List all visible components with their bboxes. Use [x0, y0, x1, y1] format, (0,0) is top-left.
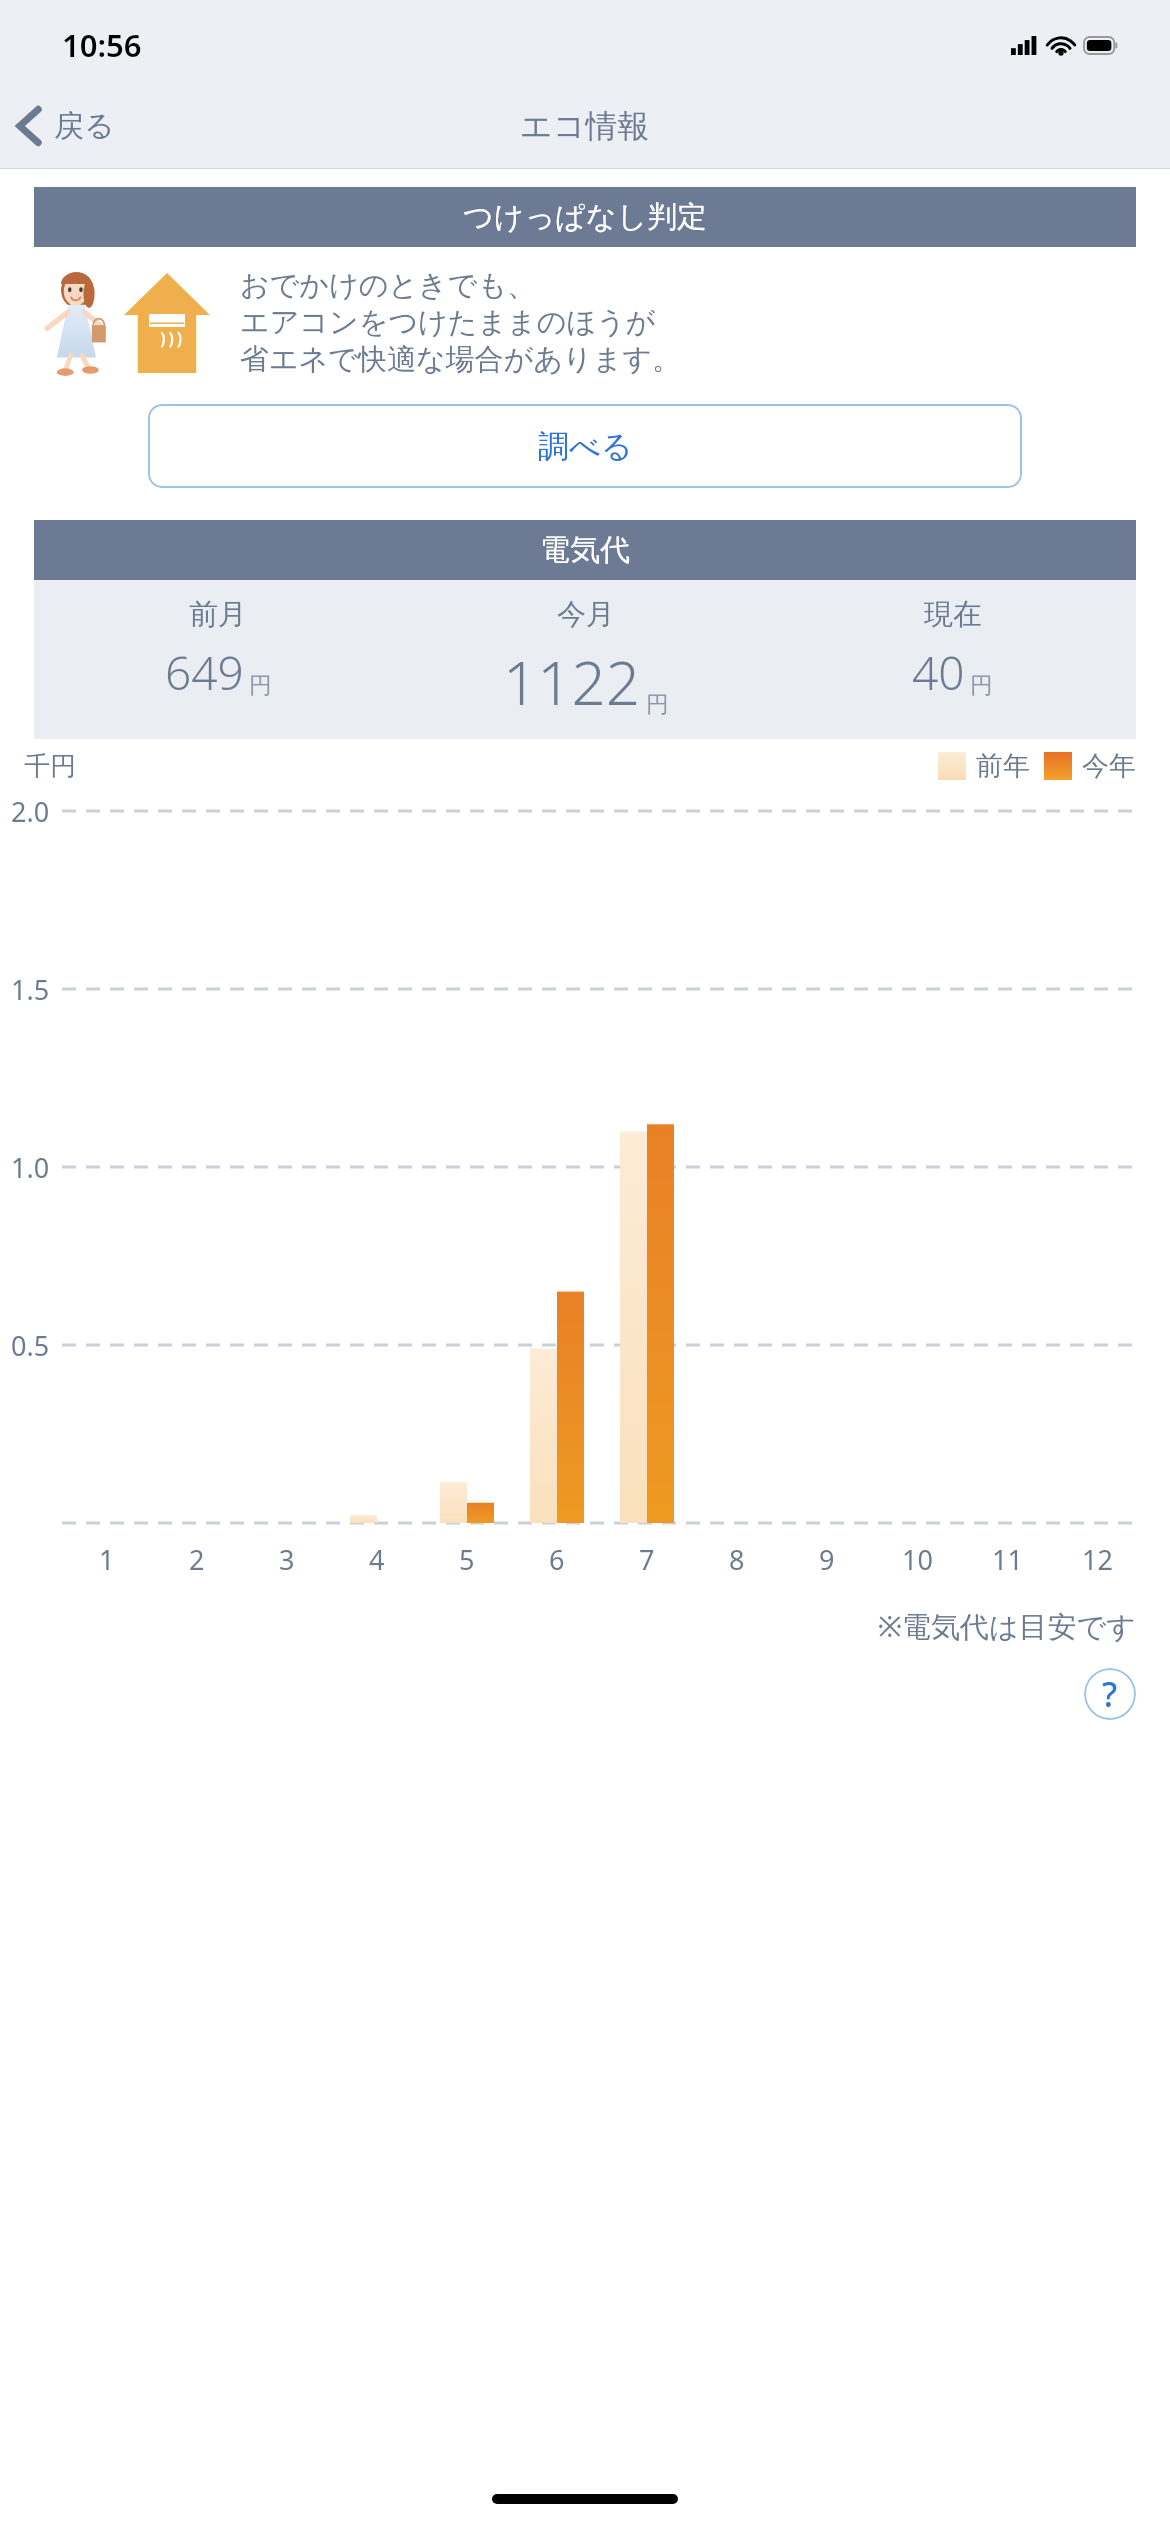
- staticText: 11: [992, 1541, 1023, 1578]
- staticText: 今年: [1082, 749, 1136, 783]
- staticText: 12: [1082, 1541, 1113, 1578]
- staticText: 7: [639, 1541, 655, 1578]
- staticText: 1.5: [11, 971, 50, 1008]
- staticText: 前月: [189, 596, 247, 633]
- button[interactable]: 調べる: [148, 404, 1022, 488]
- staticText: ※電気代は目安です: [0, 1606, 1136, 1646]
- staticText: 1122: [503, 641, 641, 723]
- staticText: 千円: [24, 750, 76, 783]
- staticText: 3: [279, 1541, 295, 1578]
- staticText: 円: [249, 671, 272, 700]
- staticText: 前年: [976, 749, 1030, 783]
- staticText: 40: [912, 641, 965, 704]
- staticText: 省エネで快適な場合があります。: [240, 341, 682, 378]
- staticText: 2.0: [11, 793, 50, 830]
- staticText: 調べる: [538, 427, 633, 466]
- staticText: 649: [165, 641, 244, 704]
- staticText: 10: [902, 1541, 933, 1578]
- staticText: 8: [729, 1541, 745, 1578]
- staticText: 4: [369, 1541, 385, 1578]
- staticText: 1.0: [11, 1149, 50, 1186]
- staticText: 円: [970, 671, 993, 700]
- staticText: エアコンをつけたままのほうが: [240, 304, 656, 341]
- staticText: 現在: [924, 596, 982, 633]
- staticText: 円: [646, 690, 669, 719]
- staticText: 今月: [557, 596, 615, 633]
- staticText: 2: [189, 1541, 205, 1578]
- staticText: 10:56: [62, 24, 142, 66]
- staticText: 戻る: [54, 107, 115, 145]
- staticText: 電気代: [540, 531, 630, 569]
- staticText: 6: [549, 1541, 565, 1578]
- button[interactable]: 戻る: [0, 99, 135, 153]
- staticText: 9: [819, 1541, 835, 1578]
- staticText: つけっぱなし判定: [463, 198, 708, 236]
- staticText: 0.5: [11, 1327, 50, 1364]
- staticText: ?: [1102, 1671, 1118, 1717]
- staticText: 1: [99, 1541, 115, 1578]
- staticText: おでかけのときでも、: [240, 267, 537, 304]
- staticText: 5: [459, 1541, 475, 1578]
- staticText: エコ情報: [520, 106, 650, 146]
- button[interactable]: Help: [1084, 1668, 1136, 1720]
